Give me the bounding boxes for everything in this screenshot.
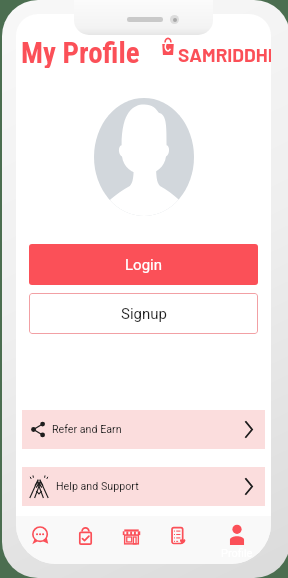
button[interactable]: Store	[108, 516, 155, 564]
staticText: Help and Support	[56, 480, 139, 493]
button[interactable]: Orders	[62, 516, 108, 564]
staticText: Login	[125, 256, 162, 274]
button[interactable]: Wishlist	[155, 516, 202, 564]
staticText: My Profile	[21, 36, 140, 68]
button[interactable]: Help and Support	[22, 467, 265, 506]
button[interactable]: Signup	[29, 293, 258, 334]
button[interactable]: Profile	[202, 516, 271, 564]
staticText: SAMRIDDHI	[178, 43, 271, 66]
staticText: Refer and Earn	[52, 423, 122, 436]
staticText: Signup	[121, 305, 167, 323]
button[interactable]: Login	[29, 244, 258, 285]
button[interactable]: Chat	[16, 516, 62, 564]
button[interactable]: Refer and Earn	[22, 410, 265, 449]
staticText: Profile	[221, 547, 253, 560]
